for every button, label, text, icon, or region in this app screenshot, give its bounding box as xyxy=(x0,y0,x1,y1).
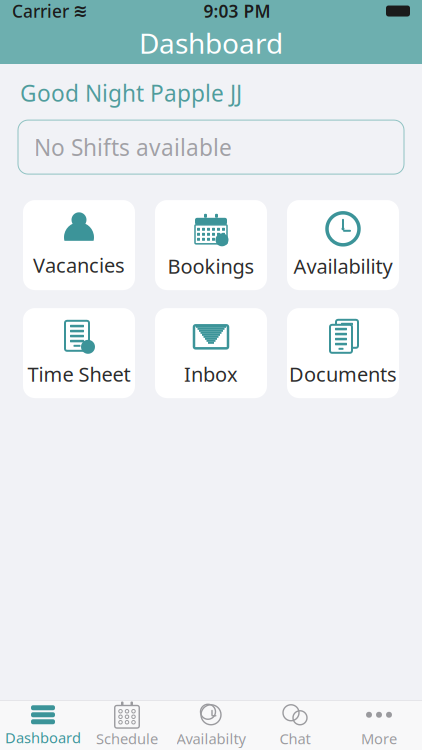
staticText: Time Sheet xyxy=(27,361,130,387)
button[interactable]: Time Sheet xyxy=(23,308,135,398)
staticText: Availability xyxy=(293,253,392,279)
staticText: Schedule xyxy=(96,729,158,748)
button[interactable]: Chat xyxy=(253,701,337,749)
button[interactable]: More xyxy=(337,701,421,749)
button[interactable]: Availability xyxy=(287,200,399,290)
staticText: Vacancies xyxy=(33,252,125,278)
staticText: No Shifts available xyxy=(34,132,232,162)
button[interactable]: Availabilty xyxy=(169,701,253,749)
staticText: Bookings xyxy=(167,253,254,279)
staticText: Carrier xyxy=(12,0,69,22)
button[interactable]: Schedule xyxy=(85,701,169,749)
button[interactable]: Bookings xyxy=(155,200,267,290)
button[interactable]: Inbox xyxy=(155,308,267,398)
staticText: Good Night Papple JJ xyxy=(20,78,242,108)
button[interactable]: Documents xyxy=(287,308,399,398)
staticText: ≋ xyxy=(73,1,88,21)
staticText: Documents xyxy=(289,361,397,387)
button[interactable]: Dashboard xyxy=(1,701,85,749)
staticText: Availabilty xyxy=(176,729,245,748)
staticText: Dashboard xyxy=(139,24,283,62)
staticText: Inbox xyxy=(184,361,238,387)
staticText: Dashboard xyxy=(5,728,81,747)
button[interactable]: Vacancies xyxy=(23,200,135,290)
staticText: 9:03 PM xyxy=(203,0,270,22)
staticText: More xyxy=(361,729,397,748)
staticText: Chat xyxy=(279,729,310,748)
